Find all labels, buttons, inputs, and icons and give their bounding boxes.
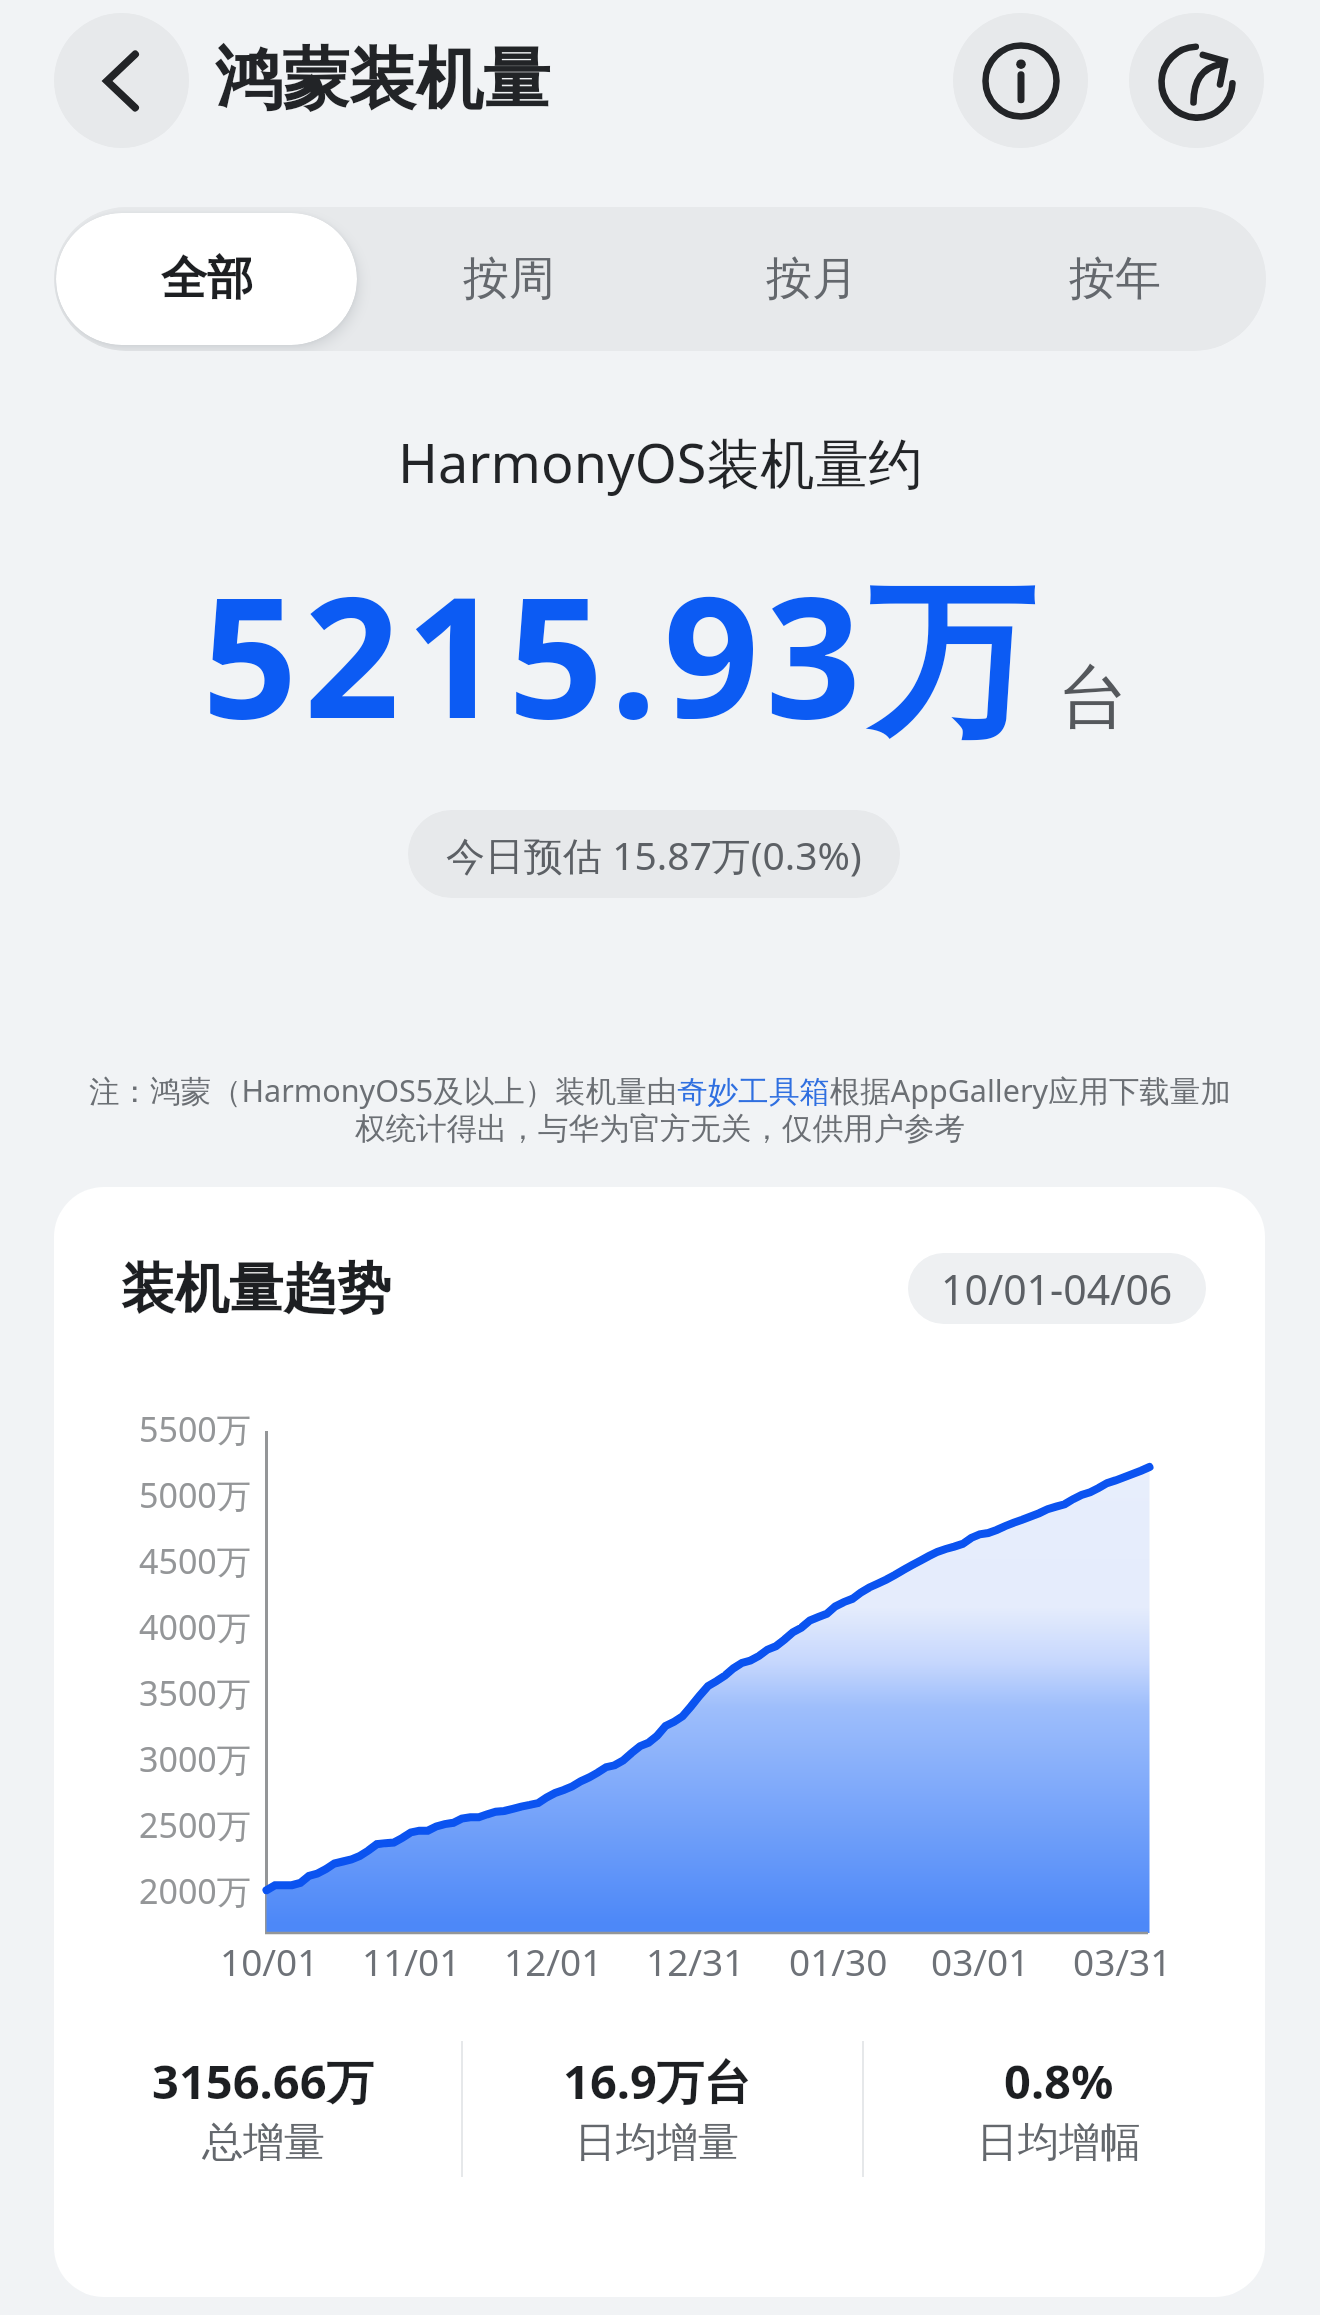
button[interactable]: 按年 [963,213,1266,345]
staticText: 03/31 [1073,1936,1172,1980]
staticText: 12/01 [504,1936,603,1980]
button[interactable]: 今日预估 15.87万(0.3%) [408,810,900,898]
staticText: 3156.66万 [152,2049,374,2113]
staticText: 按年 [1069,250,1161,308]
staticText: 4500万 [139,1538,251,1580]
staticText: 03/01 [931,1936,1030,1980]
staticText: 5500万 [139,1406,251,1448]
staticText: 日均增幅 [977,2117,1141,2169]
staticText: 5000万 [139,1472,251,1514]
staticText: 10/01-04/06 [941,1261,1173,1317]
staticText: 全部 [161,250,253,308]
staticText: HarmonyOS装机量约 [398,425,923,499]
staticText: 16.9万台 [563,2049,751,2113]
button[interactable]: 按月 [660,213,963,345]
button[interactable]: 0.8% [859,2049,1259,2189]
staticText: 01/30 [789,1936,888,1980]
staticText: 0.8% [1004,2049,1114,2113]
staticText: 10/01 [220,1936,319,1980]
staticText: 日均增量 [575,2117,739,2169]
staticText: 按月 [766,250,858,308]
staticText: 3500万 [139,1670,251,1712]
staticText: 5215.93万 [202,539,1042,767]
staticText: 11/01 [362,1936,461,1980]
button[interactable]: 3156.66万 [63,2049,463,2189]
staticText: 2000万 [139,1868,251,1910]
staticText: 装机量趋势 [121,1255,391,1323]
staticText: 今日预估 15.87万(0.3%) [446,828,862,881]
button[interactable]: 16.9万台 [457,2049,857,2189]
staticText: 总增量 [202,2117,325,2169]
staticText: 12/31 [646,1936,745,1980]
staticText: 3000万 [139,1736,251,1778]
button[interactable]: Back [54,13,189,148]
staticText: 2500万 [139,1802,251,1844]
staticText: 注：鸿蒙（HarmonyOS5及以上）装机量由奇妙工具箱根据AppGallery… [84,1069,1236,1148]
button[interactable]: 按周 [357,213,660,345]
staticText: 鸿蒙装机量 [215,37,550,121]
button[interactable]: 10/01-04/06 [908,1253,1206,1324]
staticText: 台 [1058,654,1128,742]
button[interactable]: Share [1129,13,1264,148]
staticText: 按周 [463,250,555,308]
staticText: 4000万 [139,1604,251,1646]
button[interactable]: 全部 [56,213,357,345]
button[interactable]: Information [953,13,1088,148]
